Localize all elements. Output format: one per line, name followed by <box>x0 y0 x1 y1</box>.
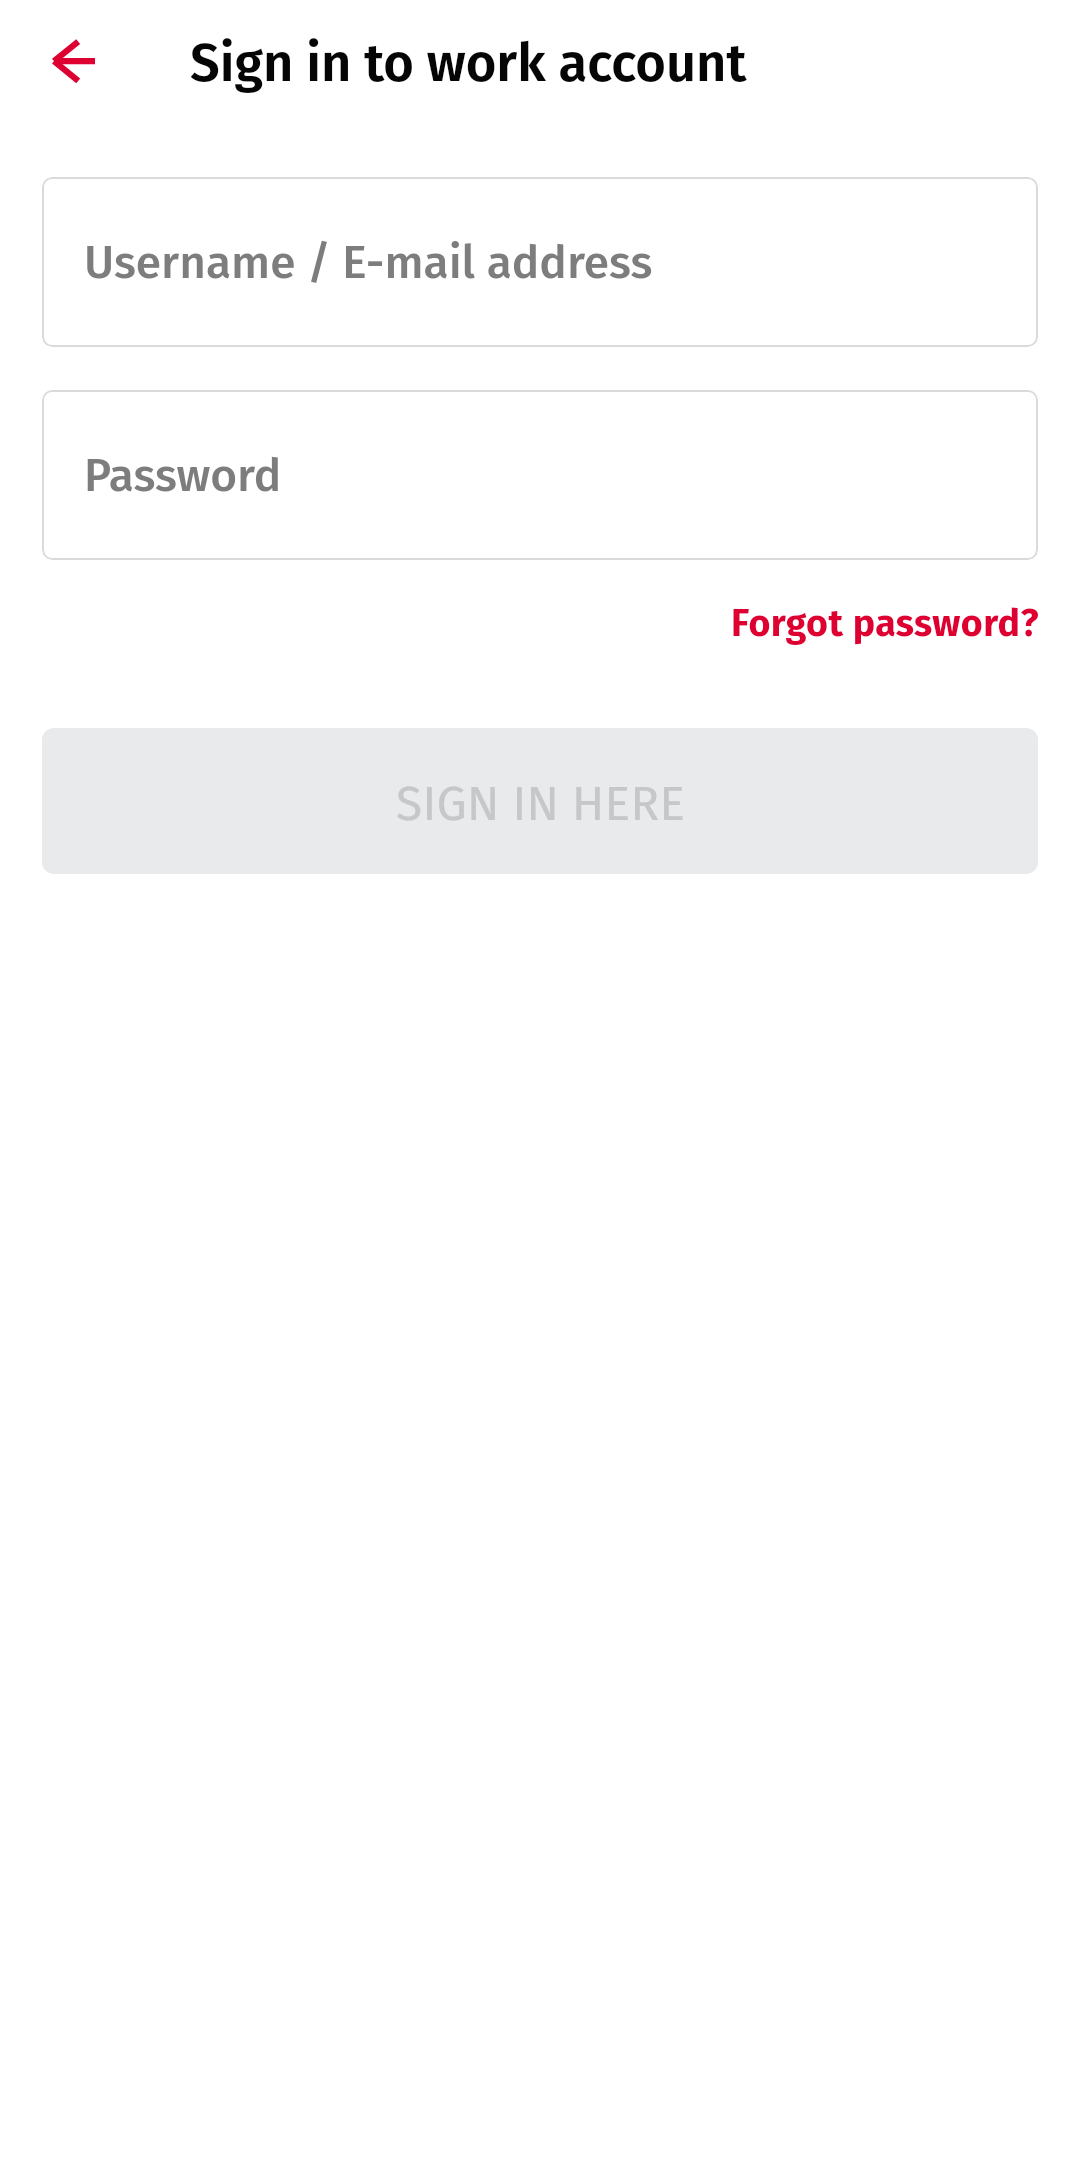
button[interactable]: Back <box>33 30 117 92</box>
button[interactable]: Forgot password? <box>731 601 1039 646</box>
staticText: Username / E-mail address <box>84 235 653 290</box>
staticText: SIGN IN HERE <box>396 775 685 833</box>
staticText: Password <box>84 448 282 503</box>
button[interactable]: Username / E-mail address <box>42 177 1038 347</box>
staticText: Sign in to work account <box>190 32 747 95</box>
button[interactable]: SIGN IN HERE <box>42 728 1038 874</box>
button[interactable]: Password <box>42 390 1038 560</box>
staticText: Forgot password? <box>731 601 1039 646</box>
